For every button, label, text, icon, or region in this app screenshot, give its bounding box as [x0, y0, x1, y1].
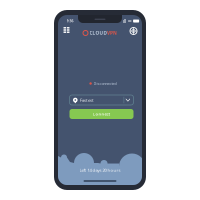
button[interactable]: Region: [127, 25, 139, 37]
staticText: Fastest: [80, 97, 94, 103]
staticText: CLOUD: [90, 30, 107, 36]
button[interactable]: Menu: [60, 24, 72, 36]
staticText: Connect: [92, 111, 110, 117]
staticText: ıll: [123, 17, 126, 25]
staticText: ≈: [127, 18, 131, 24]
button[interactable]: Connect: [69, 109, 133, 119]
button[interactable]: Fastest: [69, 95, 133, 105]
staticText: VPN: [107, 30, 117, 36]
staticText: Left 14 days 20 hours: [79, 167, 120, 173]
staticText: 9:36: [66, 19, 73, 23]
staticText: Disconnected: [94, 81, 117, 86]
